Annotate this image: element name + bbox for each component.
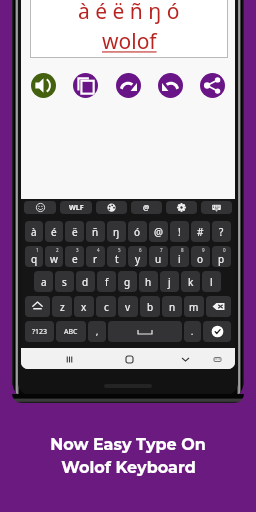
- staticText: u: [155, 252, 162, 266]
- button[interactable]: ŋ: [107, 221, 126, 242]
- staticText: @: [154, 225, 163, 239]
- button[interactable]: ABC: [56, 321, 86, 342]
- button[interactable]: !: [170, 221, 189, 242]
- button[interactable]: e: [65, 246, 84, 267]
- staticText: 5: [118, 247, 121, 253]
- button[interactable]: Emoji: [24, 201, 56, 214]
- staticText: 8: [181, 247, 184, 253]
- button[interactable]: Enter: [203, 321, 231, 342]
- button[interactable]: k: [181, 271, 200, 292]
- button[interactable]: r: [86, 246, 105, 267]
- button[interactable]: w: [45, 246, 63, 267]
- staticText: h: [145, 275, 152, 289]
- button[interactable]: Show keyboard: [210, 352, 224, 366]
- staticText: i: [178, 252, 181, 266]
- button[interactable]: Recents: [62, 352, 76, 366]
- button[interactable]: ñ: [86, 221, 105, 242]
- button[interactable]: a: [34, 271, 53, 292]
- button[interactable]: y: [128, 246, 147, 267]
- button[interactable]: b: [140, 296, 160, 317]
- button[interactable]: i: [170, 246, 189, 267]
- button[interactable]: d: [76, 271, 95, 292]
- staticText: n: [169, 300, 176, 314]
- staticText: s: [62, 275, 67, 289]
- button[interactable]: p: [212, 246, 231, 267]
- button[interactable]: à: [25, 221, 43, 242]
- staticText: .: [191, 326, 194, 337]
- staticText: j: [168, 275, 171, 289]
- button[interactable]: Speak: [31, 73, 56, 98]
- button[interactable]: .: [184, 321, 201, 342]
- staticText: à: [31, 225, 37, 239]
- button[interactable]: f: [97, 271, 116, 292]
- button[interactable]: ,: [88, 321, 106, 342]
- button[interactable]: l: [202, 271, 221, 292]
- button[interactable]: é: [45, 221, 63, 242]
- button[interactable]: x: [74, 296, 94, 317]
- staticText: o: [197, 252, 204, 266]
- button[interactable]: Undo: [158, 73, 183, 98]
- staticText: p: [218, 252, 225, 266]
- button[interactable]: Settings: [166, 201, 197, 214]
- button[interactable]: ?: [212, 221, 231, 242]
- button[interactable]: Copy: [73, 73, 98, 98]
- staticText: 9: [202, 247, 205, 253]
- staticText: x: [81, 300, 87, 314]
- button[interactable]: z: [52, 296, 72, 317]
- staticText: m: [189, 300, 199, 314]
- button[interactable]: j: [160, 271, 179, 292]
- staticText: ?: [219, 225, 224, 239]
- staticText: 1: [36, 247, 39, 253]
- button[interactable]: g: [118, 271, 137, 292]
- button[interactable]: Redo: [116, 73, 141, 98]
- staticText: y: [135, 252, 141, 266]
- staticText: g: [124, 275, 131, 289]
- staticText: a: [41, 275, 47, 289]
- button[interactable]: Space: [108, 321, 182, 342]
- staticText: ABC: [64, 327, 78, 337]
- staticText: wolof: [102, 27, 157, 56]
- staticText: 0: [223, 247, 226, 253]
- button[interactable]: c: [96, 296, 116, 317]
- button[interactable]: u: [149, 246, 168, 267]
- staticText: l: [210, 275, 213, 289]
- button[interactable]: n: [162, 296, 182, 317]
- button[interactable]: ë: [65, 221, 84, 242]
- staticText: 7: [160, 247, 163, 253]
- staticText: r: [93, 252, 98, 266]
- button[interactable]: @: [149, 221, 168, 242]
- button[interactable]: Backspace: [206, 296, 231, 317]
- button[interactable]: v: [118, 296, 138, 317]
- staticText: ,: [96, 326, 99, 337]
- button[interactable]: @: [131, 201, 162, 214]
- button[interactable]: ?123: [25, 321, 54, 342]
- button[interactable]: Hide keyboard: [201, 201, 232, 214]
- staticText: 2: [56, 247, 59, 253]
- button[interactable]: Shift: [25, 296, 50, 317]
- button[interactable]: Theme: [96, 201, 127, 214]
- button[interactable]: Share: [200, 73, 225, 98]
- button[interactable]: t: [107, 246, 126, 267]
- staticText: f: [105, 275, 109, 289]
- staticText: w: [50, 252, 58, 266]
- button[interactable]: q: [25, 246, 43, 267]
- staticText: 4: [97, 247, 100, 253]
- staticText: Now Easy Type On: [50, 435, 206, 455]
- staticText: @: [143, 203, 150, 213]
- button[interactable]: Home: [122, 352, 136, 366]
- button[interactable]: #: [191, 221, 210, 242]
- staticText: ŋ: [113, 225, 120, 239]
- button[interactable]: ó: [128, 221, 147, 242]
- button[interactable]: WLF: [60, 201, 92, 214]
- button[interactable]: s: [55, 271, 74, 292]
- staticText: t: [115, 252, 119, 266]
- staticText: ó: [134, 225, 141, 239]
- button[interactable]: h: [139, 271, 158, 292]
- button[interactable]: m: [184, 296, 204, 317]
- button[interactable]: o: [191, 246, 210, 267]
- staticText: !: [178, 225, 181, 239]
- button[interactable]: Back: [178, 352, 192, 366]
- staticText: ?123: [32, 327, 48, 337]
- staticText: 3: [76, 247, 79, 253]
- staticText: ë: [72, 225, 78, 239]
